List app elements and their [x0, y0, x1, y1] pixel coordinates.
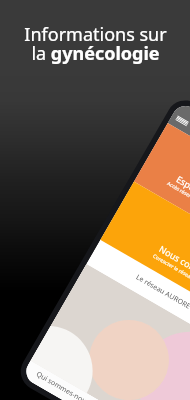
staticText: Informations sur la gynécologie	[24, 22, 167, 65]
